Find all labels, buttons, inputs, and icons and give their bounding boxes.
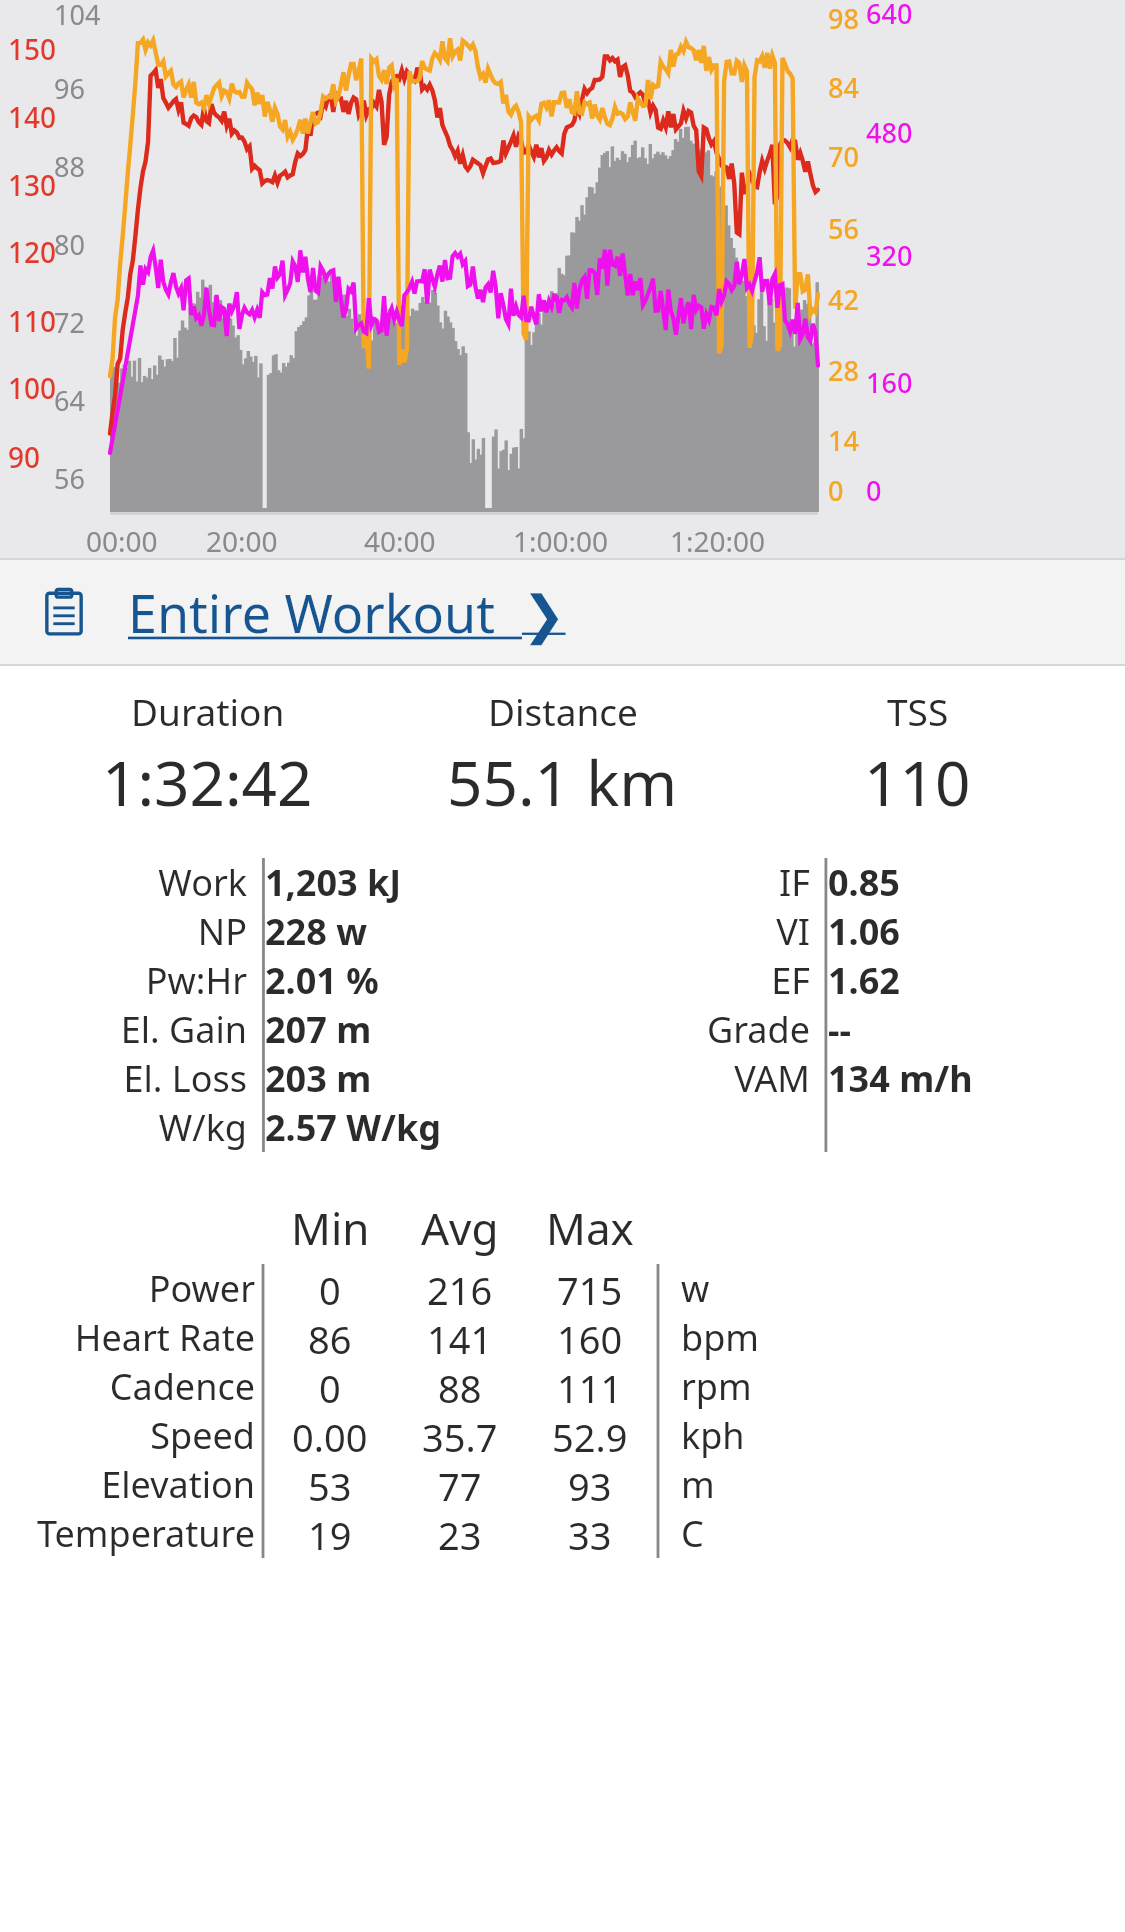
staticText: 130 [8, 166, 57, 204]
staticText: 0 [319, 1264, 341, 1313]
staticText: 0 [828, 472, 844, 509]
staticText: Grade [707, 1005, 810, 1054]
staticText: Cadence [109, 1362, 255, 1411]
staticText: 111 [557, 1362, 623, 1411]
staticText: 0.00 [292, 1411, 368, 1460]
staticText: 110 [8, 302, 57, 340]
staticText: 141 [427, 1313, 493, 1362]
staticText: 42 [828, 281, 859, 318]
staticText: C [681, 1509, 704, 1558]
staticText: 56 [54, 460, 85, 497]
staticText: EF [771, 956, 810, 1005]
staticText: 40:00 [364, 522, 436, 560]
staticText: 56 [828, 210, 859, 247]
staticText: 64 [54, 382, 85, 419]
staticText: 228 w [265, 907, 367, 956]
staticText: El. Gain [120, 1005, 247, 1054]
staticText: 96 [54, 70, 85, 107]
staticText: Heart Rate [74, 1313, 255, 1362]
staticText: 2.01 % [265, 956, 379, 1005]
staticText: 480 [866, 114, 913, 151]
staticText: 320 [866, 237, 913, 274]
staticText: 28 [828, 352, 859, 389]
staticText: 0.85 [828, 858, 900, 907]
staticText: 160 [866, 364, 913, 401]
staticText: Max [546, 1198, 634, 1258]
staticText: Speed [150, 1411, 255, 1460]
staticText: 19 [308, 1509, 352, 1558]
staticText: TSS [887, 686, 949, 736]
staticText: 1.62 [828, 956, 900, 1005]
staticText: 150 [8, 30, 57, 68]
staticText: Power [148, 1264, 255, 1313]
staticText: 84 [828, 69, 859, 106]
staticText: 53 [308, 1460, 352, 1509]
staticText: 90 [8, 438, 41, 476]
staticText: 1:20:00 [670, 522, 766, 560]
staticText: 14 [828, 422, 859, 459]
staticText: IF [779, 858, 810, 907]
staticText: 216 [427, 1264, 493, 1313]
staticText: Temperature [37, 1509, 255, 1558]
staticText: 77 [438, 1460, 482, 1509]
staticText: 134 m/h [828, 1054, 973, 1103]
staticText: 55.1 km [447, 740, 678, 824]
staticText: 0 [866, 472, 882, 509]
staticText: Pw:Hr [145, 956, 247, 1005]
staticText: 00:00 [86, 522, 158, 560]
staticText: Duration [131, 686, 285, 736]
staticText: 70 [828, 138, 859, 175]
staticText: Entire Workout ❯ [128, 577, 566, 648]
staticText: NP [197, 907, 247, 956]
staticText: 120 [8, 233, 57, 271]
staticText: 93 [568, 1460, 612, 1509]
staticText: 0 [319, 1362, 341, 1411]
staticText: Avg [421, 1198, 499, 1258]
staticText: 1:32:42 [102, 740, 313, 824]
staticText: Work [158, 858, 247, 907]
staticText: 20:00 [206, 522, 278, 560]
staticText: 715 [557, 1264, 623, 1313]
staticText: bpm [681, 1313, 759, 1362]
staticText: 160 [557, 1313, 623, 1362]
staticText: 640 [866, 0, 913, 32]
staticText: 23 [438, 1509, 482, 1558]
staticText: 98 [828, 0, 859, 37]
staticText: 140 [8, 98, 57, 136]
staticText: 100 [8, 369, 57, 407]
staticText: 88 [438, 1362, 482, 1411]
staticText: 86 [308, 1313, 352, 1362]
staticText: 52.9 [552, 1411, 628, 1460]
staticText: El. Loss [123, 1054, 247, 1103]
staticText: 80 [54, 226, 85, 263]
staticText: 33 [568, 1509, 612, 1558]
staticText: 110 [864, 740, 971, 824]
staticText: 1:00:00 [513, 522, 609, 560]
staticText: 1,203 kJ [265, 858, 402, 907]
staticText: Distance [488, 686, 638, 736]
staticText: 203 m [265, 1054, 372, 1103]
staticText: rpm [681, 1362, 752, 1411]
staticText: kph [681, 1411, 745, 1460]
staticText: VAM [734, 1054, 810, 1103]
staticText: VI [776, 907, 810, 956]
staticText: 72 [54, 304, 85, 341]
staticText: 1.06 [828, 907, 900, 956]
staticText: 88 [54, 148, 85, 185]
button[interactable]: Entire workout details [0, 560, 1125, 664]
staticText: Elevation [101, 1460, 255, 1509]
staticText: 35.7 [422, 1411, 498, 1460]
staticText: 2.57 W/kg [265, 1103, 442, 1152]
staticText: W/kg [158, 1103, 247, 1152]
other: Entire workout details [38, 586, 90, 638]
staticText: m [681, 1460, 715, 1509]
staticText: 104 [54, 0, 101, 33]
staticText: w [681, 1264, 710, 1313]
staticText: -- [828, 1005, 852, 1054]
staticText: Min [291, 1198, 370, 1258]
staticText: 207 m [265, 1005, 372, 1054]
